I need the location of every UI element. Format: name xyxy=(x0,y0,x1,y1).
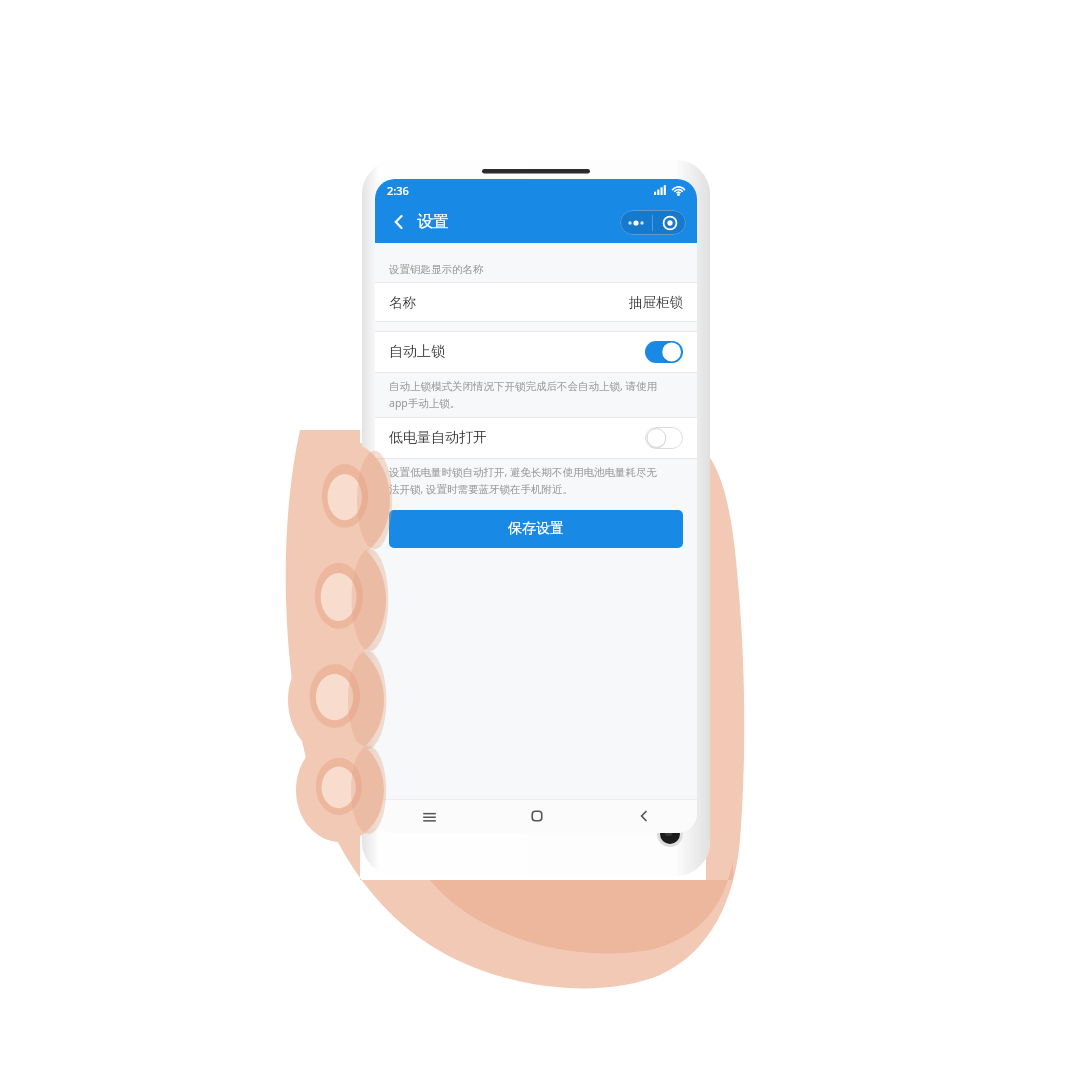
button[interactable]: 返回 xyxy=(590,799,697,833)
staticText: 名称 xyxy=(389,294,416,311)
staticText: 自动上锁模式关闭情况下开锁完成后不会自动上锁, 请使用 xyxy=(389,379,658,393)
button[interactable]: 保存设置 xyxy=(389,510,683,548)
staticText: 设置 xyxy=(417,212,449,232)
staticText: 保存设置 xyxy=(508,520,564,538)
staticText: 低电量自动打开 xyxy=(389,429,487,447)
button[interactable]: 开关 关 xyxy=(645,427,683,449)
staticText: 抽屉柜锁 xyxy=(629,294,683,311)
staticText: 法开锁, 设置时需要蓝牙锁在手机附近。 xyxy=(389,482,574,496)
button[interactable]: 返回 xyxy=(386,209,412,235)
staticText: 2:36 xyxy=(387,183,409,198)
staticText: 自动上锁 xyxy=(389,343,445,361)
button[interactable]: 关闭 xyxy=(653,210,686,235)
button[interactable]: 最近任务 xyxy=(375,799,483,833)
button[interactable]: 低电量自动打开 xyxy=(375,418,697,458)
button[interactable]: 开关 开 xyxy=(645,341,683,363)
button[interactable]: 主页 xyxy=(483,799,590,833)
button[interactable]: 名称 xyxy=(375,283,697,321)
button[interactable]: 自动上锁 xyxy=(375,332,697,372)
staticText: app手动上锁。 xyxy=(389,396,461,410)
button[interactable]: 更多 xyxy=(620,210,652,235)
staticText: 设置钥匙显示的名称 xyxy=(389,263,484,276)
staticText: 设置低电量时锁自动打开, 避免长期不使用电池电量耗尽无 xyxy=(389,465,658,479)
